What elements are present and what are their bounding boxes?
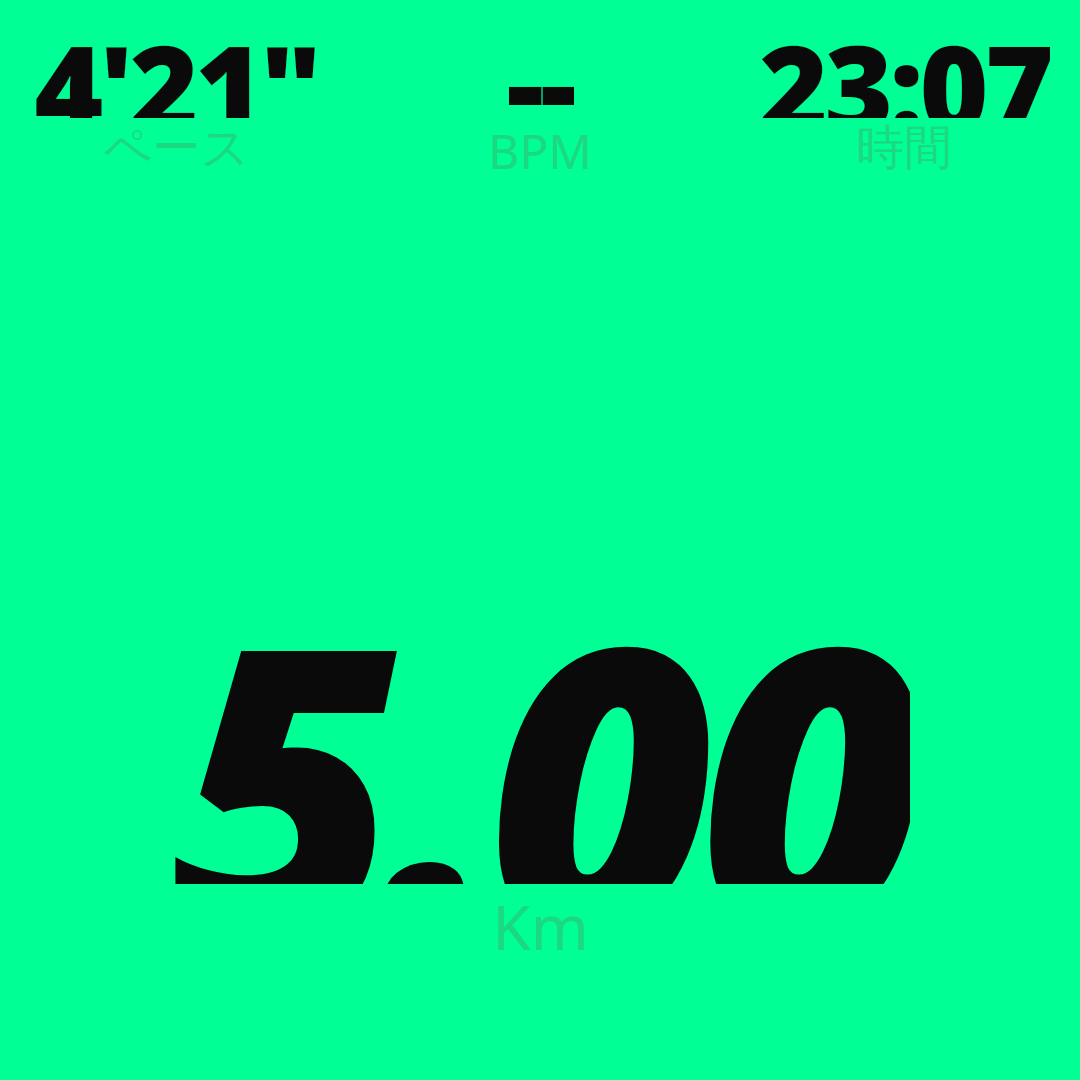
staticText: BPM bbox=[488, 118, 592, 183]
staticText: 23:07 bbox=[759, 6, 1050, 118]
button[interactable]: -- bbox=[352, 6, 728, 188]
staticText: -- bbox=[506, 2, 574, 114]
staticText: 5.00 bbox=[171, 512, 910, 884]
staticText: Km bbox=[492, 884, 589, 964]
button[interactable]: 23:07 bbox=[728, 6, 1080, 188]
button[interactable]: 4'21" bbox=[0, 6, 352, 188]
staticText: ペース bbox=[103, 118, 250, 178]
staticText: 4'21" bbox=[34, 6, 318, 118]
staticText: 時間 bbox=[856, 118, 952, 178]
button[interactable]: Distance, 5.00 kilometres bbox=[0, 512, 1080, 964]
